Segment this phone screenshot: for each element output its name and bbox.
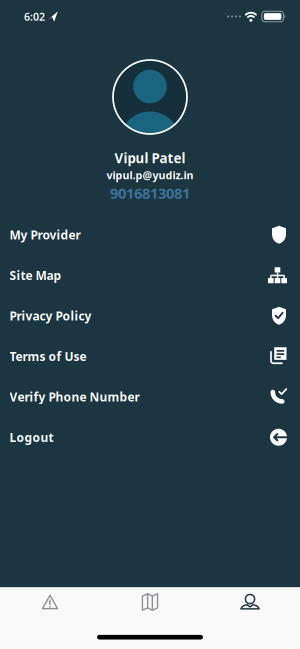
- button[interactable]: Verify Phone Number: [0, 376, 300, 417]
- button[interactable]: My Provider: [0, 214, 300, 255]
- button[interactable]: Map: [100, 589, 200, 615]
- staticText: Logout: [9, 429, 53, 445]
- staticText: Terms of Use: [9, 348, 86, 364]
- staticText: Verify Phone Number: [9, 389, 139, 405]
- button[interactable]: Profile: [200, 589, 300, 615]
- staticText: Vipul Patel: [114, 149, 185, 167]
- staticText: 9016813081: [110, 183, 190, 203]
- staticText: Privacy Policy: [9, 308, 91, 324]
- button[interactable]: Privacy Policy: [0, 295, 300, 336]
- staticText: vipul.p@yudiz.in: [106, 168, 193, 182]
- staticText: 6:02: [24, 9, 45, 24]
- staticText: My Provider: [9, 227, 80, 243]
- staticText: Site Map: [9, 267, 61, 283]
- button[interactable]: Logout: [0, 417, 300, 457]
- button[interactable]: Site Map: [0, 255, 300, 295]
- button[interactable]: Alerts: [0, 589, 100, 615]
- button[interactable]: Terms of Use: [0, 336, 300, 376]
